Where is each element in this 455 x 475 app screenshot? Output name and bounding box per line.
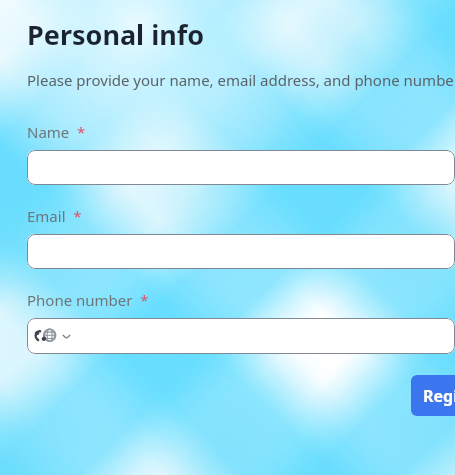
staticText: Register — [423, 385, 455, 407]
staticText: Phone number * — [27, 290, 149, 310]
button[interactable] — [27, 234, 455, 269]
staticText: Email * — [27, 206, 82, 226]
button[interactable]: Select country calling code — [36, 318, 71, 354]
staticText: Name * — [27, 122, 86, 142]
staticText: Personal info — [27, 16, 205, 53]
staticText: Please provide your name, email address,… — [27, 70, 455, 90]
button[interactable]: Select country calling code — [27, 318, 455, 354]
button[interactable] — [27, 150, 455, 185]
button[interactable]: Register — [411, 375, 455, 416]
